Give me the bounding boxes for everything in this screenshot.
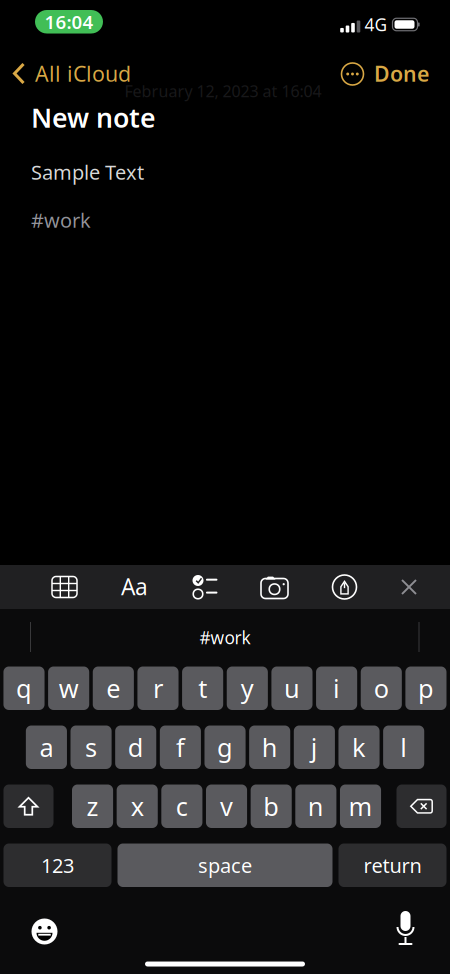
button[interactable]: z xyxy=(72,784,113,828)
button[interactable]: b xyxy=(251,784,292,828)
button[interactable]: Shift xyxy=(3,784,53,828)
button[interactable]: #work xyxy=(165,617,285,657)
button[interactable]: Dictation xyxy=(385,905,425,953)
staticText: space xyxy=(198,852,252,879)
button[interactable]: f xyxy=(160,725,201,769)
staticText: 16:04 xyxy=(44,9,93,34)
staticText: z xyxy=(86,789,98,823)
staticText: February 12, 2023 at 16:04 xyxy=(124,80,321,102)
staticText: Sample Text xyxy=(31,159,144,185)
button[interactable]: h xyxy=(249,725,290,769)
button[interactable]: o xyxy=(361,666,402,710)
staticText: c xyxy=(176,789,188,823)
button[interactable]: x xyxy=(117,784,158,828)
staticText: n xyxy=(308,789,324,823)
staticText: i xyxy=(333,671,340,705)
staticText: All iCloud xyxy=(35,59,131,88)
button[interactable]: k xyxy=(338,725,380,769)
button[interactable]: w xyxy=(48,666,89,710)
staticText: return xyxy=(363,852,421,879)
staticText: t xyxy=(198,671,207,705)
staticText: m xyxy=(348,789,372,823)
button[interactable]: m xyxy=(340,784,381,828)
button[interactable]: a xyxy=(26,725,67,769)
button[interactable]: u xyxy=(271,666,312,710)
staticText: o xyxy=(374,671,389,705)
button[interactable]: t xyxy=(182,666,223,710)
staticText: g xyxy=(217,730,233,764)
button[interactable]: Markup xyxy=(322,565,366,609)
button[interactable]: Dismiss keyboard xyxy=(387,565,431,609)
button[interactable]: n xyxy=(295,784,336,828)
button[interactable]: Insert photo xyxy=(252,565,296,609)
staticText: x xyxy=(131,789,144,823)
staticText: s xyxy=(85,730,97,764)
button[interactable]: space xyxy=(117,843,332,887)
button[interactable]: Insert table xyxy=(42,565,86,609)
staticText: #work xyxy=(199,626,250,649)
button[interactable]: r xyxy=(137,666,178,710)
staticText: f xyxy=(176,730,185,764)
button[interactable]: g xyxy=(204,725,246,769)
button[interactable]: i xyxy=(316,666,357,710)
button[interactable]: 123 xyxy=(3,843,111,887)
button[interactable]: j xyxy=(294,725,335,769)
staticText: r xyxy=(153,671,163,705)
staticText: 4G xyxy=(364,13,387,36)
staticText: v xyxy=(220,789,233,823)
button[interactable]: p xyxy=(405,666,446,710)
button[interactable]: y xyxy=(227,666,268,710)
button[interactable]: Return to call xyxy=(35,10,103,33)
button[interactable]: Back to All iCloud xyxy=(12,58,172,88)
staticText: p xyxy=(418,671,434,705)
button[interactable]: Done xyxy=(349,58,429,88)
button[interactable]: return xyxy=(338,843,446,887)
button[interactable]: c xyxy=(161,784,202,828)
staticText: e xyxy=(106,671,120,705)
staticText: d xyxy=(128,730,144,764)
button[interactable]: Emoji xyxy=(24,911,64,951)
staticText: l xyxy=(400,730,407,764)
button[interactable]: e xyxy=(93,666,134,710)
staticText: w xyxy=(59,671,79,705)
staticText: a xyxy=(39,730,53,764)
staticText: New note xyxy=(31,100,156,135)
staticText: b xyxy=(263,789,279,823)
staticText: u xyxy=(284,671,300,705)
button[interactable]: Text formatting xyxy=(112,564,156,608)
staticText: #work xyxy=(31,207,91,233)
staticText: Aa xyxy=(121,571,148,601)
staticText: j xyxy=(311,730,318,764)
staticText: q xyxy=(16,671,32,705)
button[interactable]: s xyxy=(70,725,112,769)
button[interactable]: l xyxy=(383,725,424,769)
button[interactable]: v xyxy=(206,784,247,828)
button[interactable]: Checklist xyxy=(182,565,226,609)
staticText: h xyxy=(262,730,278,764)
button[interactable]: q xyxy=(3,666,44,710)
button[interactable]: Delete xyxy=(396,784,446,828)
staticText: 123 xyxy=(41,852,74,879)
button[interactable]: More options xyxy=(339,61,365,87)
staticText: k xyxy=(352,730,366,764)
button[interactable]: d xyxy=(115,725,156,769)
staticText: Done xyxy=(374,59,429,88)
staticText: y xyxy=(241,671,254,705)
